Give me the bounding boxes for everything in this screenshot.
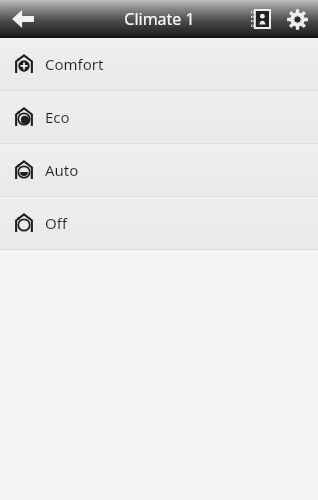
staticText: Comfort bbox=[45, 54, 104, 74]
staticText: Climate 1 bbox=[124, 8, 195, 30]
button[interactable]: Eco bbox=[0, 91, 318, 143]
button[interactable]: Auto bbox=[0, 144, 318, 196]
staticText: Eco bbox=[45, 107, 70, 127]
button[interactable]: Settings bbox=[281, 3, 313, 35]
button[interactable]: Contacts bbox=[245, 3, 277, 35]
staticText: Off bbox=[45, 213, 68, 233]
button[interactable]: Back bbox=[6, 2, 40, 36]
staticText: Auto bbox=[45, 160, 79, 180]
button[interactable]: Off bbox=[0, 197, 318, 249]
button[interactable]: Comfort bbox=[0, 38, 318, 90]
